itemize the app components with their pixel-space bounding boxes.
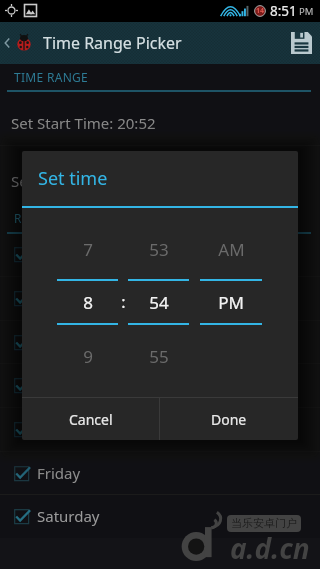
staticText: 54: [149, 291, 169, 313]
staticText: 55: [149, 345, 169, 367]
button[interactable]: Tuesday: [0, 320, 320, 364]
button[interactable]: Cancel: [22, 398, 159, 440]
staticText: Friday: [37, 463, 81, 483]
staticText: 8:51: [270, 2, 297, 20]
button[interactable]: Wednesday: [0, 363, 320, 407]
button[interactable]: Sunday: [0, 232, 320, 276]
staticText: Done: [211, 410, 247, 429]
staticText: a.d.cn: [230, 529, 310, 567]
staticText: PM: [218, 291, 244, 313]
button[interactable]: Navigate up: [0, 22, 35, 64]
button[interactable]: Friday: [0, 451, 320, 495]
button[interactable]: Saturday: [0, 494, 320, 538]
staticText: 当乐安卓门户: [231, 516, 297, 530]
staticText: Set End Time: 06:00: [11, 171, 149, 191]
staticText: :: [121, 291, 126, 313]
staticText: 14: [256, 6, 265, 16]
staticText: Thursday: [37, 419, 103, 439]
button[interactable]: Monday: [0, 276, 320, 320]
staticText: 9: [83, 345, 93, 367]
staticText: AM: [218, 238, 245, 260]
staticText: 7: [83, 238, 93, 260]
staticText: Time Range Picker: [43, 32, 182, 54]
staticText: Saturday: [37, 506, 100, 526]
staticText: Tuesday: [37, 332, 95, 352]
staticText: Set time: [38, 166, 108, 191]
staticText: REPEAT: [14, 210, 58, 226]
staticText: 8: [83, 291, 93, 313]
button[interactable]: Save: [282, 22, 320, 64]
staticText: Cancel: [69, 410, 113, 429]
staticText: Monday: [37, 288, 95, 308]
staticText: TIME RANGE: [14, 69, 89, 85]
button[interactable]: Thursday: [0, 407, 320, 451]
staticText: 53: [149, 238, 169, 260]
staticText: Sunday: [37, 244, 90, 264]
staticText: PM: [299, 5, 314, 18]
button[interactable]: Done: [160, 398, 298, 440]
staticText: Set Start Time: 20:52: [11, 113, 156, 133]
